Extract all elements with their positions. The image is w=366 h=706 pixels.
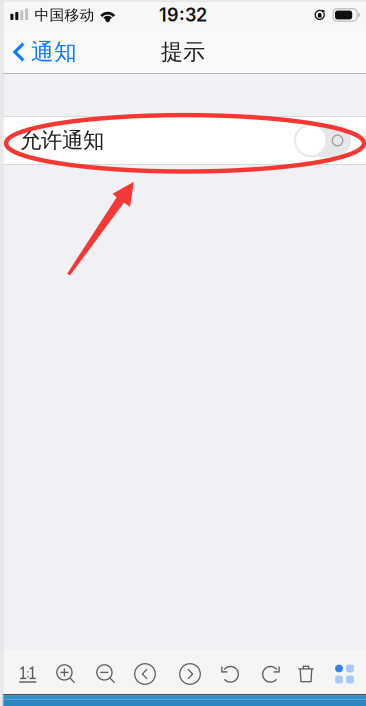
button[interactable]: Zoom out bbox=[91, 659, 121, 689]
button[interactable]: Next bbox=[175, 659, 205, 689]
button[interactable]: 允许通知 bbox=[0, 116, 366, 165]
staticText: 提示 bbox=[161, 38, 205, 66]
button[interactable]: Actual size bbox=[11, 659, 45, 689]
button[interactable]: Zoom in bbox=[51, 659, 81, 689]
button[interactable]: Previous bbox=[130, 659, 160, 689]
button[interactable]: 通知 bbox=[0, 31, 85, 73]
button[interactable]: Redo bbox=[255, 659, 285, 689]
button[interactable]: Thumbnails bbox=[329, 659, 359, 689]
staticText: 19:32 bbox=[159, 4, 207, 26]
staticText: 中国移动 bbox=[34, 6, 94, 24]
button[interactable]: Undo bbox=[215, 659, 245, 689]
staticText: 允许通知 bbox=[20, 127, 104, 154]
staticText: 通知 bbox=[31, 38, 77, 66]
button[interactable]: Delete bbox=[291, 659, 321, 689]
